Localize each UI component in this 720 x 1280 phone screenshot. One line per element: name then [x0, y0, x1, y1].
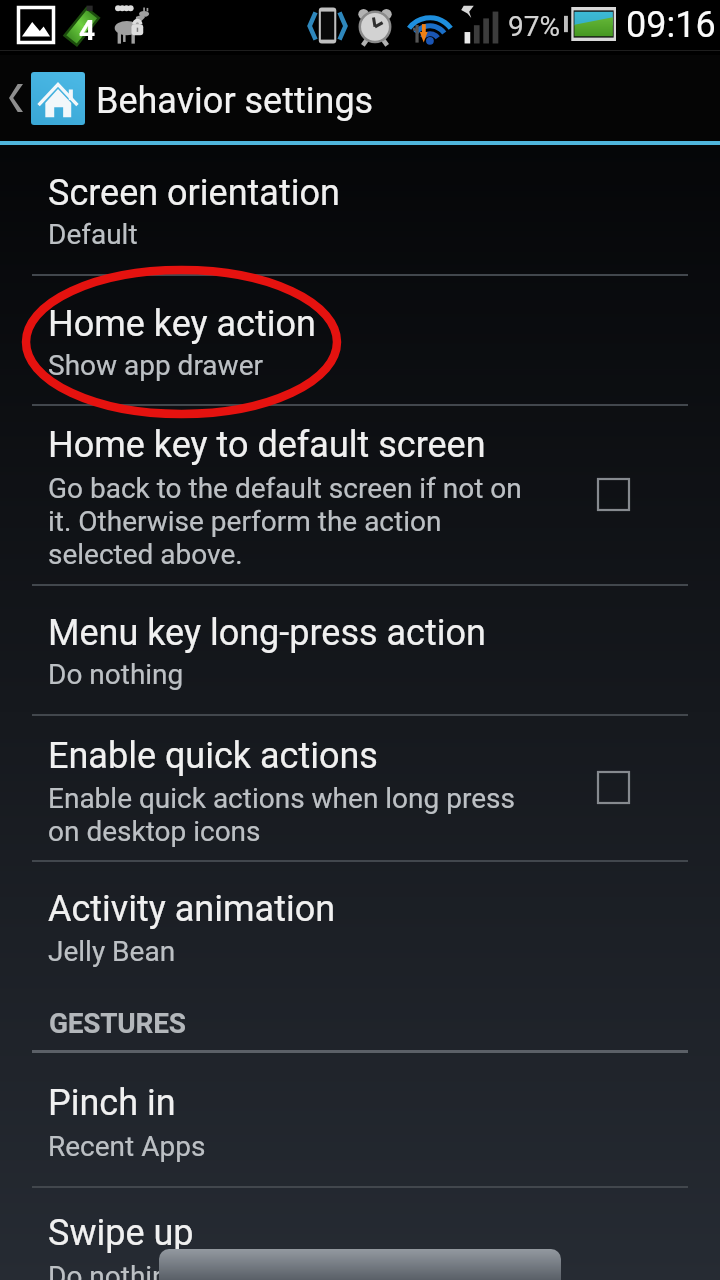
button[interactable]: Enable quick actions checkbox — [583, 757, 643, 817]
staticText: Swipe up — [48, 1212, 194, 1254]
button[interactable]: Swipe up — [0, 1186, 720, 1280]
staticText: Menu key long-press action — [48, 612, 486, 654]
button[interactable]: GESTURES — [0, 995, 720, 1050]
button[interactable]: Activity animation — [0, 860, 720, 995]
staticText: Recent Apps — [48, 1131, 206, 1163]
staticText: Do nothing — [48, 1261, 184, 1280]
staticText: Home key action — [48, 303, 316, 345]
staticText: 97% — [508, 10, 560, 43]
button[interactable]: Enable quick actions — [0, 714, 720, 860]
staticText: 4 — [79, 14, 96, 47]
button[interactable]: Home key to default screen checkbox — [583, 464, 643, 524]
button[interactable]: Menu key long-press action — [0, 584, 720, 714]
staticText: Jelly Bean — [48, 936, 176, 968]
staticText: Enable quick actions — [48, 735, 378, 777]
button[interactable]: Pinch in — [0, 1053, 720, 1186]
staticText: Do nothing — [48, 659, 184, 691]
staticText: Behavior settings — [96, 80, 374, 122]
button[interactable]: Navigate up — [0, 55, 720, 141]
staticText: GESTURES — [49, 1008, 186, 1040]
staticText: Home key to default screen — [48, 424, 486, 466]
staticText: Show app drawer — [48, 350, 263, 382]
staticText: Screen orientation — [48, 172, 340, 214]
staticText: Enable quick actions when long press on … — [48, 782, 538, 848]
staticText: Default — [48, 219, 138, 251]
staticText: Pinch in — [48, 1082, 176, 1124]
button[interactable]: Screen orientation — [0, 145, 720, 274]
button[interactable]: Home key action — [0, 274, 720, 404]
button[interactable]: Home key to default screen — [0, 404, 720, 584]
staticText: Go back to the default screen if not on … — [48, 472, 538, 571]
staticText: Activity animation — [48, 888, 336, 930]
staticText: 09:16 — [626, 4, 716, 46]
